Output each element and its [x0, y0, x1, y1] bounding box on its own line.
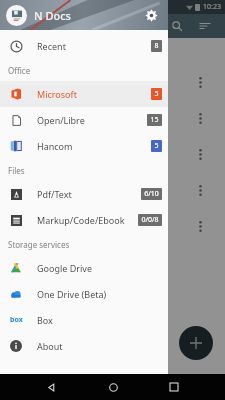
button[interactable]: Google Drive	[0, 255, 168, 281]
button[interactable]: More options	[191, 217, 209, 235]
button[interactable]: Recent	[0, 33, 168, 59]
staticText: Pdf/Text	[37, 188, 72, 200]
staticText: Office	[8, 65, 31, 76]
staticText: 10:23	[203, 2, 221, 12]
staticText: Recent	[37, 40, 66, 52]
button[interactable]: Markup/Code/Ebook	[0, 207, 168, 233]
button[interactable]: Open/Libre	[0, 107, 168, 133]
staticText: Google Drive	[37, 262, 92, 274]
staticText: Storage services	[8, 239, 70, 250]
button[interactable]: One Drive (Beta)	[0, 281, 168, 307]
staticText: N Docs	[34, 8, 71, 23]
staticText: Open/Libre	[37, 114, 85, 126]
button[interactable]: N Docs	[0, 0, 168, 30]
staticText: 6/10	[144, 189, 159, 199]
staticText: box	[10, 315, 23, 325]
staticText: 5	[154, 141, 159, 151]
button[interactable]: Settings	[142, 6, 160, 24]
button[interactable]: Home	[102, 376, 124, 398]
button[interactable]: Sort	[195, 16, 215, 36]
staticText: 0/0/8	[141, 215, 159, 225]
button[interactable]: Pdf/Text	[0, 181, 168, 207]
button[interactable]: Recent apps	[163, 376, 185, 398]
button[interactable]: Search	[167, 16, 187, 36]
button[interactable]: About	[0, 333, 168, 359]
staticText: One Drive (Beta)	[37, 288, 107, 300]
staticText: 8	[154, 41, 159, 51]
button[interactable]: More options	[191, 109, 209, 127]
staticText: Box	[37, 314, 53, 326]
staticText: Files	[8, 165, 25, 176]
button[interactable]: More options	[191, 181, 209, 199]
staticText: 15	[150, 115, 159, 125]
staticText: Markup/Code/Ebook	[37, 214, 125, 226]
staticText: About	[37, 340, 63, 352]
button[interactable]: Microsoft	[0, 81, 168, 107]
button[interactable]: Back	[40, 376, 62, 398]
button[interactable]: Add	[179, 326, 213, 360]
button[interactable]: box	[0, 307, 168, 333]
staticText: Microsoft	[37, 88, 77, 100]
button[interactable]: More options	[191, 73, 209, 91]
staticText: Hancom	[37, 140, 73, 152]
staticText: 5	[154, 89, 159, 99]
button[interactable]: More options	[191, 145, 209, 163]
button[interactable]: Hancom	[0, 133, 168, 159]
